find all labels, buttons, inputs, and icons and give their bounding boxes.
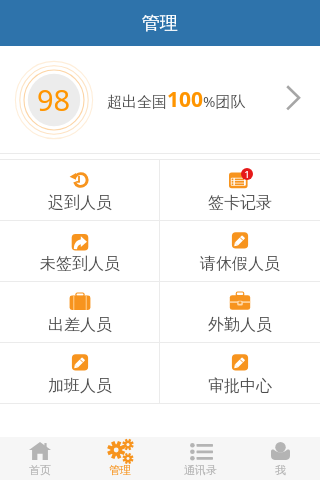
staticText: 迟到人员	[48, 193, 112, 213]
other: 查看详情	[277, 85, 307, 115]
staticText: 管理	[142, 12, 178, 35]
staticText: 我	[275, 463, 286, 477]
button[interactable]: 出差人员	[0, 282, 159, 342]
staticText: 超出全国100%团队	[107, 85, 246, 114]
staticText: 1	[244, 168, 250, 180]
staticText: 审批中心	[208, 376, 272, 396]
button[interactable]: 98	[0, 46, 320, 153]
staticText: 首页	[29, 463, 51, 477]
button[interactable]: 管理	[80, 437, 160, 480]
button[interactable]: 首页	[0, 437, 80, 480]
button[interactable]: 未签到人员	[0, 221, 159, 281]
button[interactable]: 请休假人员	[160, 221, 320, 281]
staticText: 管理	[109, 463, 131, 477]
button[interactable]: 通讯录	[160, 437, 240, 480]
button[interactable]: 1	[160, 160, 320, 220]
staticText: 未签到人员	[40, 254, 120, 274]
button[interactable]: 外勤人员	[160, 282, 320, 342]
button[interactable]: 审批中心	[160, 343, 320, 403]
button[interactable]: 加班人员	[0, 343, 159, 403]
button[interactable]: 迟到人员	[0, 160, 159, 220]
staticText: 加班人员	[48, 376, 112, 396]
staticText: 出差人员	[48, 315, 112, 335]
staticText: 请休假人员	[200, 254, 280, 274]
staticText: 外勤人员	[208, 315, 272, 335]
button[interactable]: 我	[240, 437, 320, 480]
staticText: 通讯录	[184, 463, 217, 477]
staticText: 签卡记录	[208, 193, 272, 213]
staticText: 98	[37, 80, 71, 119]
